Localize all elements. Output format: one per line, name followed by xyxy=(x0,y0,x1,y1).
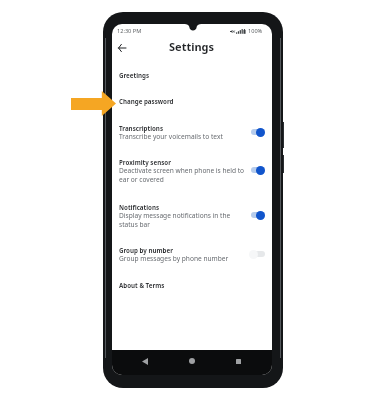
staticText: 100% xyxy=(248,27,263,35)
staticText: Group by number xyxy=(119,246,173,254)
button[interactable]: Home xyxy=(186,355,198,367)
staticText: Transcribe your voicemails to text xyxy=(119,132,223,141)
button[interactable]: Proximity sensor xyxy=(112,154,272,186)
button[interactable]: Back xyxy=(114,40,129,55)
button[interactable]: About & Terms xyxy=(112,275,272,294)
staticText: Settings xyxy=(169,39,215,54)
button[interactable]: Recents xyxy=(232,355,244,367)
staticText: Display message notifications in the sta… xyxy=(119,211,246,229)
button[interactable]: Back xyxy=(139,355,151,367)
staticText: About & Terms xyxy=(119,281,165,289)
button[interactable]: Greetings xyxy=(112,65,272,84)
button[interactable]: Change password xyxy=(112,91,272,110)
button[interactable]: Group by number xyxy=(112,242,272,265)
button[interactable]: Transcriptions xyxy=(112,120,272,143)
staticText: Change password xyxy=(119,97,174,105)
button[interactable]: Notifications xyxy=(112,199,272,231)
staticText: Group messages by phone number xyxy=(119,254,229,263)
staticText: 12:30 PM xyxy=(117,27,142,35)
staticText: Notifications xyxy=(119,203,160,211)
staticText: Transcriptions xyxy=(119,124,163,132)
staticText: Proximity sensor xyxy=(119,158,171,166)
staticText: Deactivate screen when phone is held to … xyxy=(119,166,246,184)
staticText: Greetings xyxy=(119,71,150,79)
